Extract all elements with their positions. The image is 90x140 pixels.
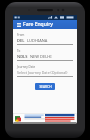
button[interactable]: SEARCH [35,83,55,90]
staticText: LUDHIANA [27,38,48,43]
button[interactable]: NDLS [17,53,73,61]
staticText: Journey Date [17,65,36,69]
staticText: NDLS [17,54,28,59]
staticText: From [17,33,25,37]
button[interactable]: DEL [17,37,73,45]
staticText: Select Journey Date (Optional) [17,70,68,75]
button[interactable]: Select Journey Date (Optional) [17,69,73,77]
staticText: SEARCH [39,85,52,89]
staticText: NEW DELHI [30,54,52,59]
staticText: To [17,49,21,53]
staticText: Fare Enquiry [23,21,53,28]
button[interactable]: Open navigation menu [15,21,22,28]
staticText: DEL [17,38,25,43]
button[interactable]: Advertisement [13,113,77,124]
